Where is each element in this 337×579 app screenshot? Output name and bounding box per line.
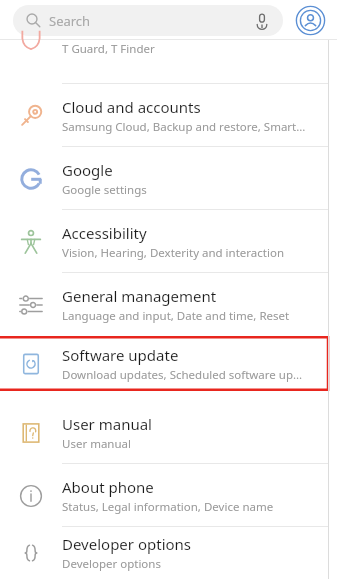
staticText: Developer options [62,534,192,554]
staticText: General management [62,286,217,306]
staticText: Cloud and accounts [62,97,201,117]
button[interactable]: Account [295,5,326,36]
staticText: User manual [62,414,152,434]
staticText: User manual [62,436,131,452]
staticText: About phone [62,477,154,497]
staticText: Status, Legal information, Device name [62,499,274,515]
staticText: Google settings [62,182,147,198]
button[interactable]: Voice search [251,10,273,32]
staticText: T Guard, T Finder [62,41,155,57]
staticText: Language and input, Date and time, Reset [62,308,290,324]
button[interactable]: T Guard, T Finder [0,40,337,84]
button[interactable]: User manual [0,401,337,464]
button[interactable]: Cloud and accounts [0,84,337,147]
button[interactable]: Google [0,147,337,210]
button[interactable]: About phone [0,464,337,527]
staticText: Download updates, Scheduled software up… [62,367,303,383]
button[interactable]: Software update [0,336,337,391]
staticText: Google [62,160,113,180]
staticText: Accessibility [62,223,147,243]
button[interactable]: Developer options [0,527,337,579]
button[interactable]: Accessibility [0,210,337,273]
staticText: Software update [62,345,179,365]
button[interactable]: General management [0,273,337,336]
button[interactable]: Search [13,5,283,36]
staticText: Samsung Cloud, Backup and restore, Smart… [62,119,306,135]
staticText: Developer options [62,556,161,572]
staticText: Search [49,12,91,30]
staticText: Vision, Hearing, Dexterity and interacti… [62,245,285,261]
